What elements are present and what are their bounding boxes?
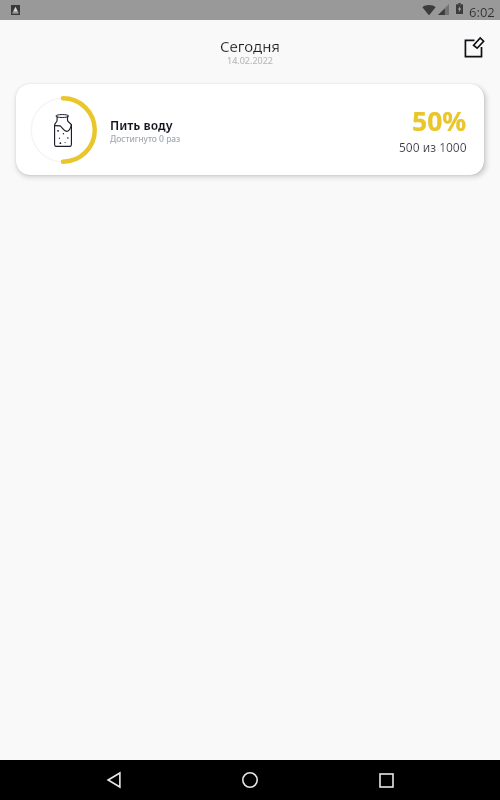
button[interactable]: Edit bbox=[458, 29, 492, 63]
staticText: Достигнуто 0 раз bbox=[110, 133, 181, 145]
staticText: 14.02.2022 bbox=[227, 54, 274, 66]
button[interactable]: Home bbox=[228, 760, 272, 800]
staticText: 500 из 1000 bbox=[399, 139, 467, 155]
staticText: 6:02 bbox=[469, 3, 495, 21]
staticText: Сегодня bbox=[220, 36, 281, 56]
button[interactable]: Back bbox=[92, 760, 136, 800]
button[interactable]: Recents bbox=[364, 760, 408, 800]
staticText: 50% bbox=[412, 103, 467, 139]
staticText: Пить воду bbox=[110, 117, 173, 133]
button[interactable]: Пить воду bbox=[16, 84, 484, 175]
